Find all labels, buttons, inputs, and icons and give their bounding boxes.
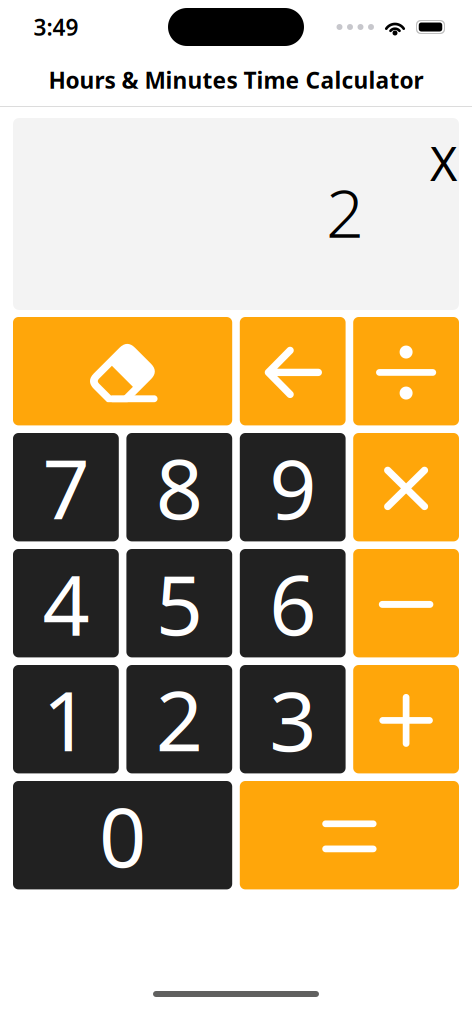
button[interactable]: 4 — [13, 549, 119, 657]
staticText: 5 — [156, 548, 203, 658]
button[interactable]: Backspace — [240, 317, 346, 425]
staticText: 6 — [269, 548, 316, 658]
staticText: 2 — [156, 664, 203, 774]
button[interactable]: Erase — [13, 317, 232, 425]
button[interactable]: 3 — [240, 665, 346, 773]
button[interactable]: 6 — [240, 549, 346, 657]
button[interactable]: 1 — [13, 665, 119, 773]
staticText: Hours & Minutes Time Calculator — [48, 65, 423, 95]
button[interactable]: 9 — [240, 433, 346, 541]
staticText: X — [430, 132, 457, 194]
staticText: 7 — [42, 432, 89, 542]
staticText: 2 — [326, 168, 364, 256]
button[interactable]: Subtract — [353, 549, 459, 657]
staticText: 3 — [269, 664, 316, 774]
button[interactable]: Divide — [353, 317, 459, 425]
button[interactable]: 2 — [126, 665, 232, 773]
staticText: 4 — [42, 548, 89, 658]
staticText: 1 — [42, 664, 89, 774]
staticText: 3:49 — [33, 12, 78, 42]
button[interactable]: Add — [353, 665, 459, 773]
button[interactable]: Multiply — [353, 433, 459, 541]
button[interactable]: 5 — [126, 549, 232, 657]
staticText: 9 — [269, 432, 316, 542]
staticText: 8 — [156, 432, 203, 542]
button[interactable]: Clear all — [428, 118, 459, 181]
button[interactable]: 8 — [126, 433, 232, 541]
button[interactable]: Equals — [240, 781, 459, 889]
staticText: 0 — [99, 780, 146, 890]
button[interactable]: 0 — [13, 781, 232, 889]
button[interactable]: 7 — [13, 433, 119, 541]
